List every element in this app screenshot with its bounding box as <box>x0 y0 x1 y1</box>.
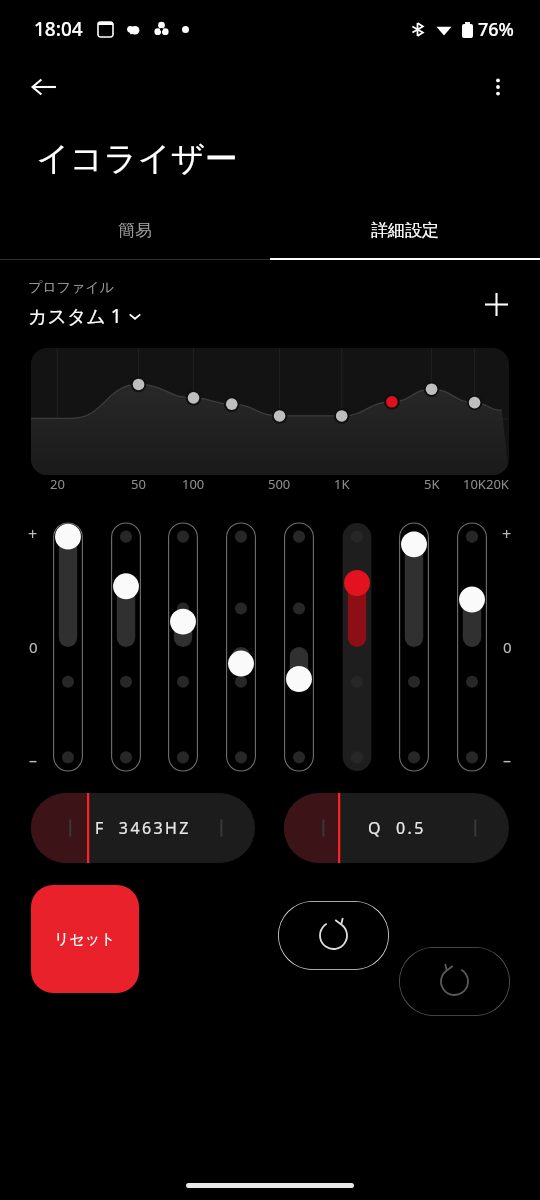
staticText: Q 0.5 <box>368 817 426 839</box>
staticText: 簡易 <box>118 220 152 241</box>
staticText: F 3463HZ <box>95 817 191 839</box>
button[interactable] <box>31 348 509 475</box>
staticText: 76% <box>478 17 514 42</box>
staticText: プロファイル <box>28 279 114 297</box>
button[interactable]: Add profile <box>472 280 520 328</box>
button[interactable]: Back <box>20 63 68 111</box>
staticText: 500 <box>268 475 291 505</box>
button[interactable] <box>163 523 203 771</box>
staticText: 20K <box>486 475 509 505</box>
staticText: イコライザー <box>36 138 238 180</box>
staticText: 5K <box>424 475 440 505</box>
button[interactable] <box>394 523 434 771</box>
button[interactable]: Redo <box>399 947 510 1016</box>
staticText: 18:04 <box>34 16 83 42</box>
staticText: 50 <box>131 475 146 505</box>
staticText: + <box>28 523 38 545</box>
staticText: リセット <box>54 930 116 949</box>
staticText: – <box>29 749 38 771</box>
button[interactable] <box>279 523 319 771</box>
staticText: – <box>503 749 512 771</box>
button[interactable]: リセット <box>31 885 139 993</box>
button[interactable]: F 3463HZ <box>31 793 255 863</box>
button[interactable]: 簡易 <box>0 202 270 258</box>
button[interactable] <box>337 523 377 771</box>
staticText: + <box>502 523 512 545</box>
button[interactable] <box>106 523 146 771</box>
button[interactable] <box>48 523 88 771</box>
button[interactable]: カスタム 1 <box>28 303 142 329</box>
button[interactable]: 詳細設定 <box>270 202 540 258</box>
staticText: 100 <box>182 475 205 505</box>
button[interactable] <box>452 523 492 771</box>
staticText: カスタム 1 <box>28 303 122 329</box>
staticText: 20 <box>50 475 65 505</box>
staticText: 10K <box>463 475 486 505</box>
button[interactable]: Q 0.5 <box>284 793 509 863</box>
button[interactable]: Undo <box>278 901 389 970</box>
button[interactable]: More options <box>474 63 522 111</box>
staticText: 詳細設定 <box>371 220 439 241</box>
staticText: 0 <box>29 637 38 657</box>
staticText: 1K <box>334 475 350 505</box>
button[interactable] <box>221 523 261 771</box>
staticText: 0 <box>503 637 512 657</box>
